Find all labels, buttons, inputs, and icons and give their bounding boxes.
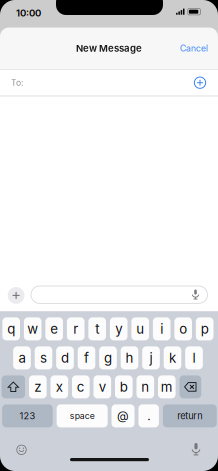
staticText: k xyxy=(169,350,176,366)
button[interactable]: i xyxy=(153,317,170,340)
button[interactable]: w xyxy=(24,317,41,340)
button[interactable]: j xyxy=(142,346,160,369)
staticText: return xyxy=(177,410,202,421)
button[interactable]: h xyxy=(121,346,138,369)
button[interactable]: t xyxy=(88,317,106,340)
button[interactable]: a xyxy=(13,346,31,369)
button[interactable]: l xyxy=(185,346,203,369)
staticText: h xyxy=(125,350,133,366)
button[interactable]: p xyxy=(196,317,213,340)
staticText: m xyxy=(161,379,173,395)
staticText: z xyxy=(34,379,41,395)
button[interactable]: m xyxy=(158,375,176,398)
staticText: 123 xyxy=(19,410,35,422)
button[interactable]: . xyxy=(138,404,159,427)
staticText: Cancel xyxy=(180,43,208,53)
staticText: To: xyxy=(11,77,23,88)
staticText: x xyxy=(56,379,63,395)
button[interactable]: @ xyxy=(112,404,135,427)
staticText: v xyxy=(99,379,106,395)
button[interactable]: c xyxy=(72,375,90,398)
staticText: f xyxy=(84,350,89,366)
button[interactable]: Shift xyxy=(1,375,25,398)
staticText: r xyxy=(73,321,78,337)
staticText: g xyxy=(104,350,112,366)
button[interactable]: space xyxy=(57,404,108,427)
button[interactable]: y xyxy=(110,317,127,340)
button[interactable]: x xyxy=(50,375,68,398)
button[interactable]: return xyxy=(163,404,217,427)
staticText: a xyxy=(18,350,25,366)
staticText: c xyxy=(77,379,85,395)
button[interactable]: o xyxy=(174,317,192,340)
staticText: l xyxy=(192,350,195,366)
staticText: . xyxy=(147,409,150,423)
staticText: w xyxy=(27,321,38,337)
staticText: u xyxy=(136,321,144,337)
button[interactable]: e xyxy=(45,317,63,340)
staticText: n xyxy=(141,379,149,395)
staticText: i xyxy=(160,321,163,337)
staticText: 10:00 xyxy=(16,7,41,19)
button[interactable]: d xyxy=(56,346,74,369)
button[interactable]: Delete xyxy=(179,375,201,398)
button[interactable]: z xyxy=(29,375,47,398)
staticText: b xyxy=(120,379,128,395)
button[interactable]: s xyxy=(35,346,52,369)
button[interactable]: Dictate xyxy=(191,443,201,456)
button[interactable]: 123 xyxy=(2,404,53,427)
button[interactable]: n xyxy=(136,375,154,398)
button[interactable]: Cancel xyxy=(171,36,217,60)
button[interactable]: f xyxy=(78,346,95,369)
staticText: New Message xyxy=(76,42,142,54)
staticText: d xyxy=(61,350,69,366)
staticText: e xyxy=(50,321,58,337)
button[interactable]: q xyxy=(2,317,20,340)
button[interactable]: u xyxy=(131,317,149,340)
button[interactable]: To: xyxy=(0,70,218,96)
button[interactable]: r xyxy=(67,317,84,340)
staticText: p xyxy=(201,321,209,337)
button[interactable]: g xyxy=(99,346,117,369)
staticText: @ xyxy=(117,409,129,423)
button[interactable] xyxy=(31,286,207,303)
staticText: s xyxy=(40,350,47,366)
staticText: o xyxy=(179,321,187,337)
staticText: space xyxy=(70,411,95,421)
staticText: j xyxy=(149,350,152,366)
staticText: t xyxy=(95,321,99,337)
button[interactable]: Add media xyxy=(8,287,24,304)
button[interactable]: b xyxy=(115,375,133,398)
button[interactable]: k xyxy=(164,346,181,369)
button[interactable]: Emoji xyxy=(16,445,26,455)
button[interactable]: v xyxy=(93,375,111,398)
staticText: y xyxy=(115,321,122,337)
staticText: q xyxy=(7,321,15,337)
